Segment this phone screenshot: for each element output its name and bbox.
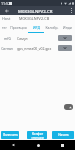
button[interactable]: Open Сигнал list	[58, 45, 72, 51]
staticText: Инди	[63, 25, 72, 30]
staticText: M0X3GLNFV2-CR	[18, 8, 53, 14]
staticText: Host	[2, 16, 11, 21]
button[interactable]: Инди	[60, 22, 75, 33]
button[interactable]: Конфиг станции	[27, 131, 47, 139]
staticText: mfG	[4, 36, 11, 41]
staticText: Конфиг станции	[31, 132, 44, 139]
button[interactable]: ИРД	[28, 22, 44, 33]
staticText: gps_nmea00_v02.gpx	[17, 46, 52, 51]
button[interactable]: Back	[2, 140, 24, 150]
button[interactable]: Начать	[52, 131, 74, 139]
staticText: M0X3GLNFV2-CB	[19, 16, 50, 21]
staticText: тег	[2, 25, 7, 30]
button[interactable]: Проекция	[9, 22, 28, 33]
staticText: Проекция	[10, 25, 27, 30]
button[interactable]: Open mfG list	[58, 35, 72, 41]
staticText: Включить	[3, 133, 18, 137]
button[interactable]: Recent apps	[51, 140, 73, 150]
staticText: Сигнал	[1, 46, 13, 51]
button[interactable]: More options	[67, 6, 75, 15]
staticText: 11:52	[1, 1, 11, 6]
button[interactable]: тег	[0, 22, 9, 33]
button[interactable]: Home	[27, 140, 49, 150]
button[interactable]: Калибр.	[44, 22, 60, 33]
button[interactable]: Navigate up	[0, 6, 13, 15]
staticText: Симул	[17, 36, 28, 41]
staticText: ИРД	[33, 25, 40, 30]
button[interactable]: Scroll	[64, 104, 73, 110]
button[interactable]: Включить	[1, 131, 19, 139]
staticText: Начать	[58, 133, 69, 137]
staticText: Калибр.	[45, 25, 59, 30]
